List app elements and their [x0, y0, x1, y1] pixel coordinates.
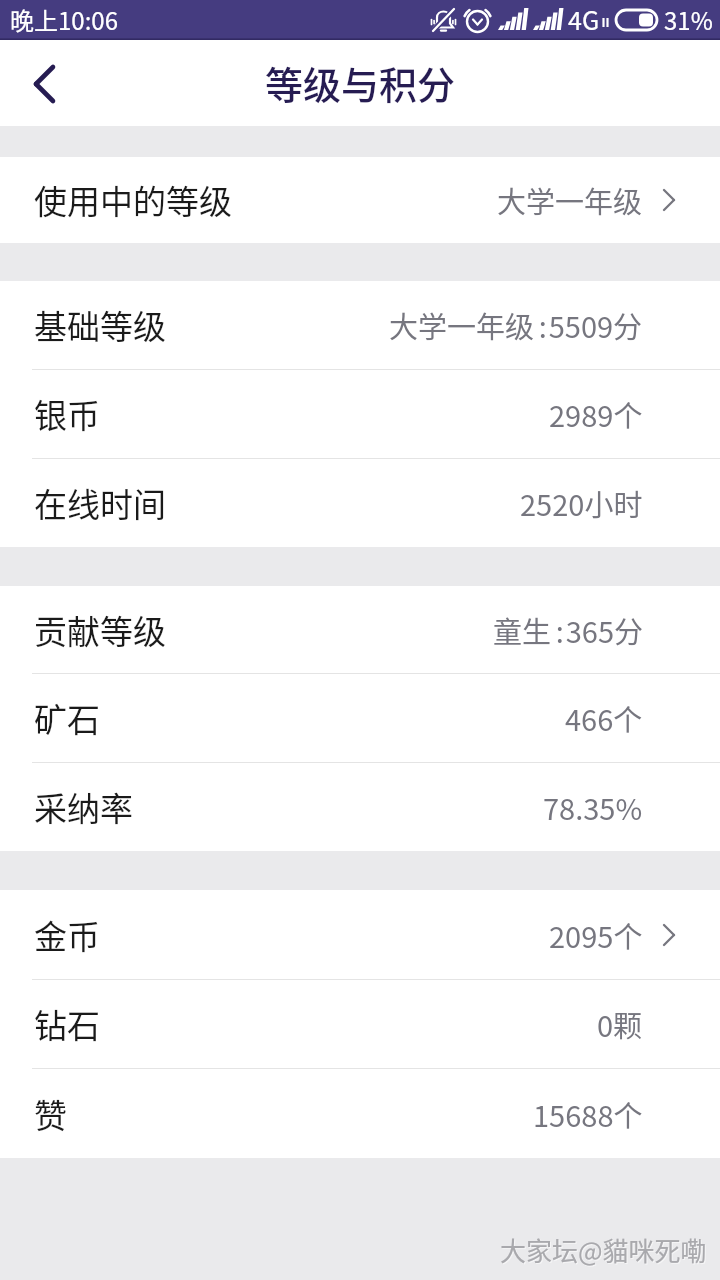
- staticText: 2520小时: [520, 482, 643, 524]
- button[interactable]: 贡献等级: [0, 586, 720, 673]
- staticText: 晚上10:06: [10, 2, 118, 37]
- staticText: 赞: [34, 1090, 67, 1138]
- staticText: 童生 : 365分: [493, 609, 643, 651]
- staticText: 金币: [34, 911, 100, 959]
- button[interactable]: 在线时间: [0, 459, 720, 547]
- button[interactable]: 矿石: [0, 674, 720, 762]
- button[interactable]: 银币: [0, 370, 720, 458]
- staticText: 大学一年级 : 5509分: [389, 304, 643, 346]
- staticText: 2095个: [549, 914, 643, 956]
- staticText: 4G: [568, 1, 600, 37]
- button[interactable]: 钻石: [0, 980, 720, 1068]
- button[interactable]: 采纳率: [0, 763, 720, 851]
- staticText: 大家坛@貓咪死嘞: [500, 1231, 707, 1269]
- staticText: 银币: [34, 390, 100, 438]
- staticText: 31%: [664, 2, 713, 37]
- staticText: 2989个: [549, 393, 643, 435]
- staticText: 466个: [565, 697, 643, 739]
- button[interactable]: 赞: [0, 1069, 720, 1158]
- staticText: 大家坛@貓咪死嘞: [501, 1232, 708, 1270]
- staticText: 在线时间: [34, 479, 166, 527]
- button[interactable]: 金币: [0, 890, 720, 979]
- staticText: 矿石: [34, 694, 100, 742]
- staticText: 贡献等级: [34, 606, 166, 654]
- staticText: 等级与积分: [265, 55, 456, 110]
- staticText: 使用中的等级: [34, 176, 232, 224]
- staticText: 0颗: [597, 1003, 643, 1045]
- button[interactable]: Back: [0, 40, 86, 126]
- staticText: 78.35%: [543, 786, 643, 828]
- staticText: 15688个: [533, 1093, 643, 1135]
- staticText: 采纳率: [34, 783, 133, 831]
- staticText: 钻石: [34, 1000, 100, 1048]
- button[interactable]: 使用中的等级: [0, 157, 720, 243]
- button[interactable]: 基础等级: [0, 281, 720, 369]
- staticText: 大学一年级: [497, 179, 643, 221]
- staticText: 基础等级: [34, 301, 166, 349]
